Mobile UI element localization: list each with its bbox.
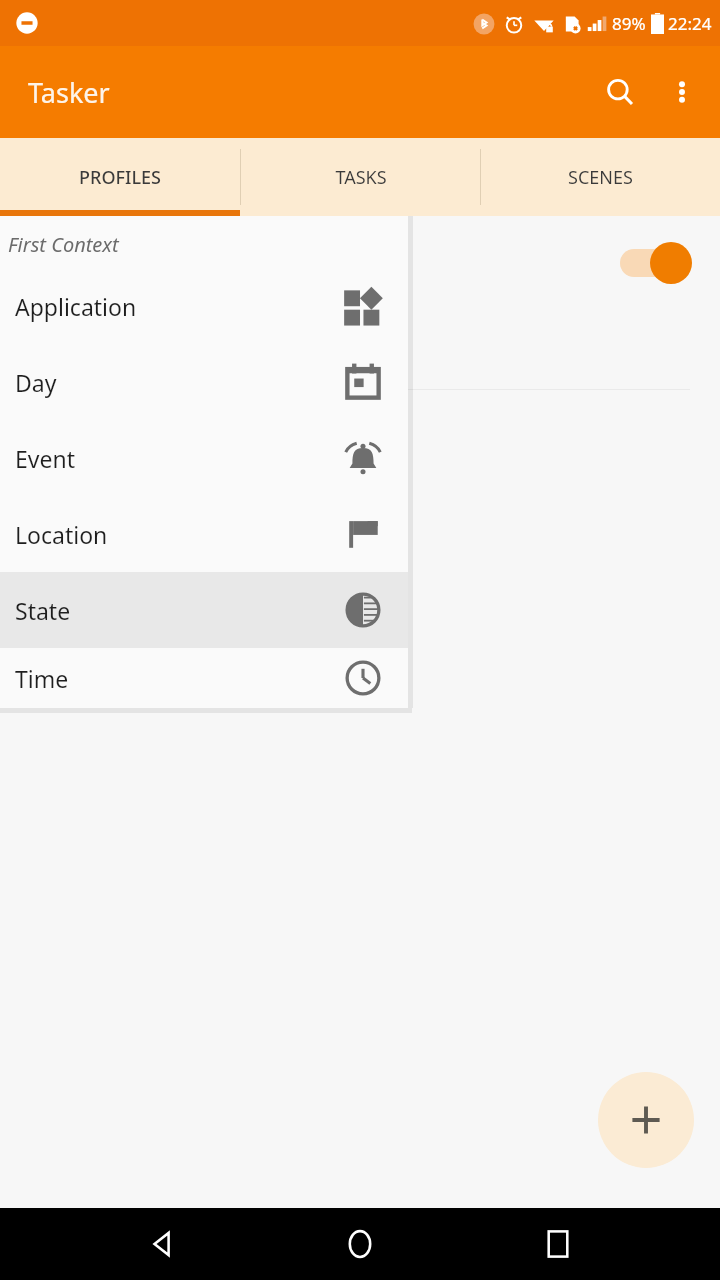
button[interactable]: Event xyxy=(0,420,408,496)
staticText: 89% xyxy=(612,12,646,35)
button[interactable]: Location xyxy=(0,496,408,572)
staticText: Location xyxy=(15,519,108,550)
staticText: Kobo Books xyxy=(30,244,177,278)
button[interactable]: Back xyxy=(126,1208,198,1280)
button[interactable]: PROFILES xyxy=(0,138,240,216)
staticText: First Context xyxy=(8,231,119,258)
button[interactable]: Application xyxy=(0,268,408,344)
staticText: TASKS xyxy=(335,165,387,190)
button[interactable]: Search xyxy=(592,64,648,120)
staticText: Tasker xyxy=(28,74,110,111)
button[interactable]: Kobo Books xyxy=(0,216,720,390)
staticText: PROFILES xyxy=(79,165,161,190)
staticText: State xyxy=(15,595,71,626)
staticText: Application xyxy=(15,291,137,322)
button[interactable]: Add profile xyxy=(598,1072,694,1168)
staticText: Event xyxy=(15,443,75,474)
button[interactable]: Time xyxy=(0,648,408,708)
button[interactable]: Home xyxy=(324,1208,396,1280)
staticText: Day xyxy=(15,367,57,398)
staticText: Time xyxy=(15,663,69,694)
button[interactable] xyxy=(616,240,692,286)
button[interactable]: State xyxy=(0,572,408,648)
button[interactable]: Day xyxy=(0,344,408,420)
button[interactable]: More options xyxy=(654,64,710,120)
button[interactable]: Recent apps xyxy=(522,1208,594,1280)
button[interactable]: TASKS xyxy=(241,138,480,216)
staticText: SCENES xyxy=(568,165,633,190)
staticText: 22:24 xyxy=(668,12,712,35)
button[interactable]: SCENES xyxy=(481,138,720,216)
